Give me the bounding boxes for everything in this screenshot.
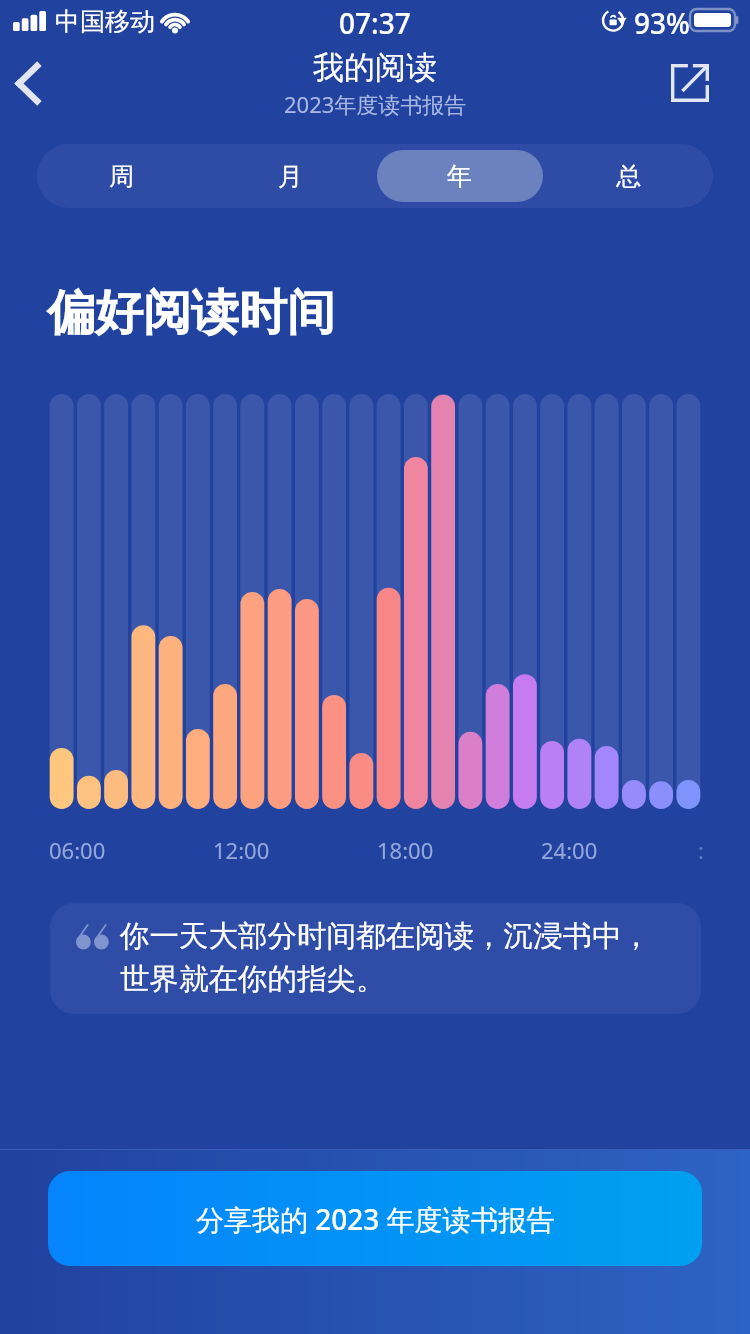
staticText: 分享我的 2023 年度读书报告	[196, 1200, 555, 1238]
button[interactable]: 月	[206, 144, 375, 208]
staticText: 93%	[634, 4, 690, 42]
staticText: 06:00	[49, 835, 106, 865]
staticText: 18:00	[377, 835, 434, 865]
button[interactable]: 分享我的 2023 年度读书报告	[48, 1171, 702, 1266]
button[interactable]: 周	[37, 144, 206, 208]
staticText: 周	[109, 161, 134, 192]
button[interactable]: 年	[375, 144, 544, 208]
button[interactable]: 你一天大部分时间都在阅读，沉浸书中， 世界就在你的指尖。	[50, 903, 701, 1014]
staticText: 偏好阅读时间	[47, 283, 335, 343]
staticText: 07:37	[339, 4, 411, 42]
button[interactable]: 总	[544, 144, 713, 208]
staticText: 你一天大部分时间都在阅读，沉浸书中， 世界就在你的指尖。	[120, 918, 651, 997]
staticText: 我的阅读	[313, 48, 437, 87]
staticText: 中国移动	[55, 6, 155, 37]
staticText: :	[698, 835, 704, 865]
staticText: 2023年度读书报告	[284, 89, 467, 119]
staticText: 12:00	[213, 835, 270, 865]
staticText: 24:00	[541, 835, 598, 865]
staticText: 总	[616, 161, 641, 192]
staticText: 月	[278, 161, 303, 192]
button[interactable]: Share	[660, 53, 720, 113]
button[interactable]: Back	[0, 53, 60, 113]
staticText: 年	[447, 161, 472, 192]
